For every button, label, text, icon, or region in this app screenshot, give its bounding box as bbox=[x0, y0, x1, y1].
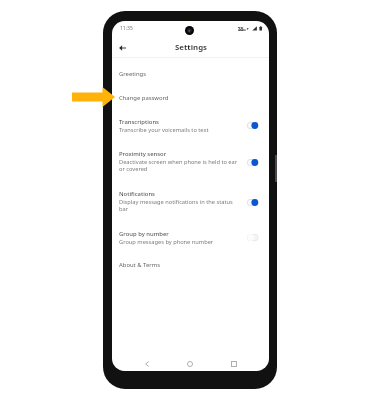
staticText: Proximity sensor bbox=[119, 150, 167, 158]
staticText: Notifications bbox=[119, 190, 155, 198]
button[interactable]: Back bbox=[114, 40, 130, 56]
staticText: 11:35 bbox=[120, 25, 133, 32]
button[interactable]: Change password bbox=[112, 91, 269, 104]
staticText: Settings bbox=[175, 42, 207, 53]
button[interactable]: Home bbox=[184, 358, 196, 370]
button[interactable]: Proximity sensor bbox=[112, 148, 269, 174]
staticText: 35 bbox=[238, 26, 244, 33]
staticText: Display message notifications in the sta… bbox=[119, 198, 233, 206]
staticText: or covered bbox=[119, 165, 148, 173]
staticText: Change password bbox=[119, 94, 169, 102]
staticText: Group by number bbox=[119, 230, 169, 238]
staticText: Transcribe your voicemails to text bbox=[119, 126, 209, 134]
staticText: Group messages by phone number bbox=[119, 238, 214, 246]
button[interactable]: Back bbox=[141, 358, 153, 370]
staticText: Greetings bbox=[119, 70, 146, 78]
button[interactable]: Recents bbox=[228, 358, 240, 370]
button[interactable]: Group by number bbox=[112, 228, 269, 247]
button[interactable]: About & Terms bbox=[112, 258, 269, 271]
button[interactable]: Greetings bbox=[112, 67, 269, 80]
staticText: bar bbox=[119, 205, 129, 213]
staticText: About & Terms bbox=[119, 261, 161, 269]
button[interactable]: Notifications bbox=[112, 188, 269, 214]
button[interactable]: Transcriptions bbox=[112, 116, 269, 135]
staticText: Transcriptions bbox=[119, 118, 159, 126]
staticText: Deactivate screen when phone is held to … bbox=[119, 158, 238, 166]
